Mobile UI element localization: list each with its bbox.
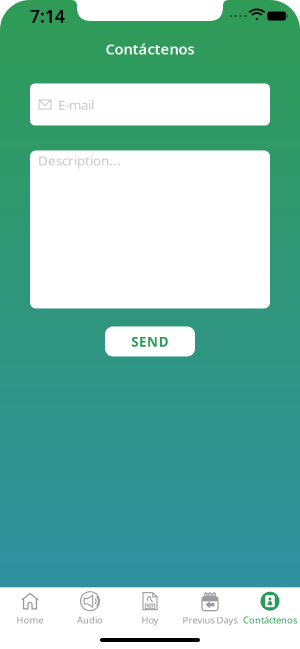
button[interactable]: Contáctenos — [240, 592, 300, 626]
button[interactable]: E-mail — [30, 83, 270, 125]
staticText: E-mail — [58, 96, 94, 113]
button[interactable]: Description... — [30, 150, 270, 308]
button[interactable]: Previus Days — [180, 592, 240, 626]
button[interactable]: Audio — [60, 592, 120, 626]
button[interactable]: PDF — [120, 592, 180, 626]
staticText: PDF — [146, 604, 153, 609]
staticText: Previus Days — [182, 614, 237, 626]
button[interactable]: Home — [0, 592, 60, 626]
staticText: Description... — [38, 151, 121, 169]
staticText: Contáctenos — [243, 614, 297, 626]
button[interactable]: SEND — [105, 326, 195, 356]
staticText: SEND — [131, 333, 169, 350]
staticText: Home — [16, 614, 43, 626]
staticText: 7:14 — [30, 4, 65, 27]
staticText: Contáctenos — [105, 39, 194, 58]
staticText: Hoy — [141, 614, 158, 626]
staticText: Audio — [77, 614, 103, 626]
